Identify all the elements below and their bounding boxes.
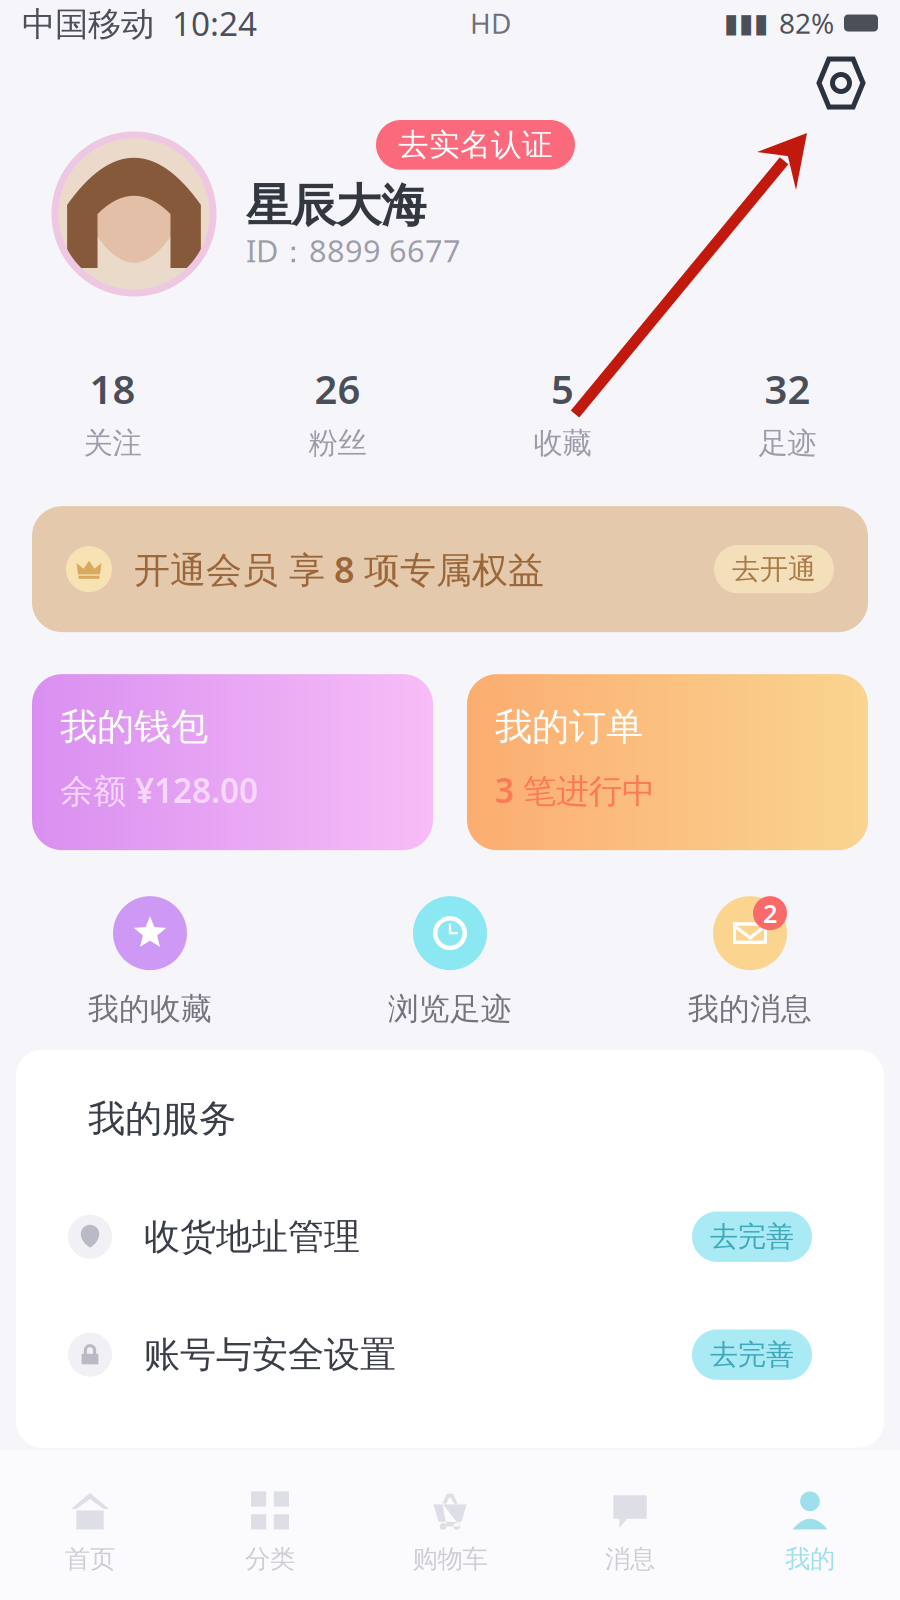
staticText: 32 (764, 362, 810, 415)
staticText: 首页 (65, 1543, 115, 1574)
button[interactable]: 浏览足迹 (300, 896, 600, 1028)
staticText: 26 (314, 362, 360, 415)
staticText: HD (470, 4, 511, 42)
button[interactable]: 收货地址管理 (16, 1178, 884, 1296)
button[interactable]: 分类 (180, 1475, 360, 1574)
staticText: 2 (763, 896, 777, 930)
staticText: 收货地址管理 (144, 1215, 360, 1259)
button[interactable]: 我的 (720, 1475, 900, 1574)
staticText: 足迹 (758, 425, 816, 461)
staticText: 分类 (245, 1543, 295, 1574)
button[interactable]: 账号与安全设置 (16, 1296, 884, 1414)
staticText: 购物车 (412, 1543, 487, 1574)
button[interactable]: Profile photo (58, 138, 210, 290)
staticText: 粉丝 (308, 425, 366, 461)
staticText: 消息 (605, 1543, 655, 1574)
staticText: 开通会员 享 8 项专属权益 (134, 545, 544, 593)
staticText: 5 (551, 362, 574, 415)
button[interactable]: 18 (0, 362, 225, 461)
staticText: 中国移动 10:24 (22, 1, 257, 45)
staticText: 82% (779, 4, 834, 42)
staticText: 余额 ¥128.00 (60, 768, 258, 812)
staticText: 收藏 (533, 425, 591, 461)
button[interactable]: 购物车 (360, 1475, 540, 1574)
button[interactable]: Settings (814, 56, 868, 110)
staticText: ID：8899 6677 (246, 230, 461, 271)
staticText: 去实名认证 (398, 126, 553, 164)
staticText: 浏览足迹 (388, 990, 512, 1028)
button[interactable]: 首页 (0, 1475, 180, 1574)
staticText: 18 (89, 362, 135, 415)
staticText: 账号与安全设置 (144, 1333, 396, 1377)
button[interactable]: 我的钱包 (32, 674, 433, 850)
staticText: 我的订单 (495, 704, 643, 750)
staticText: 去完善 (710, 1219, 794, 1254)
button[interactable]: 消息 (540, 1475, 720, 1574)
button[interactable]: 我的收藏 (0, 896, 300, 1028)
staticText: 我的收藏 (88, 990, 212, 1028)
button[interactable]: 5 (450, 362, 675, 461)
staticText: 我的 (785, 1543, 835, 1574)
staticText: 去开通 (732, 552, 816, 586)
staticText: 我的消息 (688, 990, 812, 1028)
button[interactable]: 去实名认证 (376, 120, 575, 170)
button[interactable]: 开通会员 享 8 项专属权益 (32, 506, 868, 632)
staticText: 我的钱包 (60, 704, 208, 750)
button[interactable]: 32 (675, 362, 900, 461)
staticText: 我的服务 (88, 1096, 236, 1142)
staticText: 星辰大海 (246, 178, 426, 234)
staticText: 关注 (83, 425, 141, 461)
button[interactable]: 26 (225, 362, 450, 461)
button[interactable]: 我的订单 (467, 674, 868, 850)
staticText: 去完善 (710, 1337, 794, 1372)
staticText: 3 笔进行中 (495, 768, 655, 812)
staticText: ▮▮▮ (724, 8, 769, 38)
button[interactable]: 2 (600, 896, 900, 1028)
